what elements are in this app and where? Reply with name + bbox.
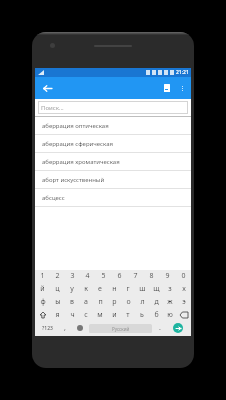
staticText: а bbox=[84, 297, 88, 307]
button[interactable]: Dictionary bbox=[159, 80, 175, 96]
staticText: е bbox=[98, 284, 102, 294]
staticText: о bbox=[126, 297, 131, 307]
staticText: щ bbox=[153, 284, 160, 294]
button[interactable]: абсцесс bbox=[35, 189, 191, 206]
staticText: ж bbox=[167, 297, 173, 307]
button[interactable]: 3 bbox=[65, 270, 80, 282]
button[interactable]: 7 bbox=[127, 270, 143, 282]
button[interactable]: аберрация хроматическая bbox=[35, 153, 191, 170]
button[interactable]: ч bbox=[65, 308, 79, 321]
button[interactable]: 9 bbox=[159, 270, 175, 282]
button[interactable]: й bbox=[35, 282, 50, 295]
button[interactable]: и bbox=[107, 308, 121, 321]
staticText: м bbox=[97, 310, 103, 320]
button[interactable]: Enter bbox=[167, 321, 189, 335]
button[interactable]: ш bbox=[135, 282, 149, 295]
button[interactable]: ы bbox=[50, 295, 65, 308]
button[interactable]: Emoji bbox=[72, 321, 88, 335]
button[interactable]: аборт искусственный bbox=[35, 171, 191, 188]
staticText: 5 bbox=[101, 271, 106, 281]
staticText: т bbox=[126, 310, 130, 320]
button[interactable]: ю bbox=[163, 308, 177, 321]
staticText: 6 bbox=[117, 271, 122, 281]
button[interactable]: ц bbox=[50, 282, 65, 295]
staticText: ш bbox=[139, 284, 146, 294]
staticText: 0 bbox=[181, 271, 186, 281]
button[interactable]: т bbox=[121, 308, 135, 321]
button[interactable]: 2 bbox=[50, 270, 65, 282]
button[interactable]: 8 bbox=[143, 270, 159, 282]
button[interactable]: , bbox=[58, 321, 72, 335]
button[interactable]: э bbox=[177, 295, 191, 308]
button[interactable]: х bbox=[177, 282, 191, 295]
staticText: 2 bbox=[55, 271, 60, 281]
staticText: ц bbox=[55, 284, 60, 294]
staticText: д bbox=[154, 297, 159, 307]
staticText: 8 bbox=[149, 271, 154, 281]
staticText: Поиск... bbox=[41, 104, 64, 112]
staticText: з bbox=[168, 284, 172, 294]
button[interactable]: в bbox=[65, 295, 79, 308]
button[interactable]: Shift bbox=[35, 308, 50, 321]
staticText: б bbox=[154, 310, 159, 320]
button[interactable]: More options bbox=[175, 81, 189, 95]
button[interactable]: р bbox=[107, 295, 121, 308]
button[interactable]: 0 bbox=[175, 270, 191, 282]
staticText: аберрация сферическая bbox=[42, 140, 113, 148]
staticText: 21:21 bbox=[176, 69, 189, 76]
button[interactable]: н bbox=[107, 282, 121, 295]
button[interactable]: ф bbox=[35, 295, 50, 308]
staticText: в bbox=[70, 297, 74, 307]
staticText: 4 bbox=[85, 271, 90, 281]
staticText: ь bbox=[140, 310, 144, 320]
staticText: , bbox=[64, 323, 66, 333]
staticText: 1 bbox=[40, 271, 45, 281]
button[interactable]: ж bbox=[163, 295, 177, 308]
button[interactable]: у bbox=[65, 282, 79, 295]
staticText: аборт искусственный bbox=[42, 176, 105, 184]
button[interactable]: к bbox=[79, 282, 93, 295]
button[interactable]: аберрация оптическая bbox=[35, 117, 191, 134]
button[interactable]: м bbox=[93, 308, 107, 321]
staticText: аберрация хроматическая bbox=[42, 158, 120, 166]
button[interactable]: щ bbox=[149, 282, 163, 295]
button[interactable]: 4 bbox=[80, 270, 95, 282]
button[interactable]: Back bbox=[39, 80, 55, 96]
staticText: . bbox=[159, 323, 161, 333]
staticText: я bbox=[55, 310, 60, 320]
button[interactable]: Русский bbox=[89, 324, 152, 333]
staticText: ф bbox=[40, 297, 46, 307]
button[interactable]: д bbox=[149, 295, 163, 308]
button[interactable]: б bbox=[149, 308, 163, 321]
staticText: к bbox=[84, 284, 88, 294]
staticText: х bbox=[182, 284, 186, 294]
button[interactable]: я bbox=[50, 308, 65, 321]
staticText: н bbox=[112, 284, 117, 294]
staticText: э bbox=[182, 297, 186, 307]
staticText: абсцесс bbox=[42, 194, 65, 202]
button[interactable]: 1 bbox=[35, 270, 50, 282]
staticText: п bbox=[98, 297, 103, 307]
button[interactable]: г bbox=[121, 282, 135, 295]
staticText: 3 bbox=[70, 271, 75, 281]
button[interactable]: з bbox=[163, 282, 177, 295]
button[interactable]: аберрация сферическая bbox=[35, 135, 191, 152]
button[interactable]: 5 bbox=[95, 270, 111, 282]
button[interactable]: Поиск... bbox=[38, 101, 188, 114]
staticText: 7 bbox=[133, 271, 138, 281]
button[interactable]: о bbox=[121, 295, 135, 308]
button[interactable]: 6 bbox=[111, 270, 127, 282]
button[interactable]: л bbox=[135, 295, 149, 308]
staticText: й bbox=[40, 284, 45, 294]
button[interactable]: . bbox=[153, 321, 167, 335]
button[interactable]: ?123 bbox=[37, 321, 58, 335]
staticText: с bbox=[84, 310, 88, 320]
staticText: ю bbox=[167, 310, 173, 320]
button[interactable]: е bbox=[93, 282, 107, 295]
staticText: 9 bbox=[165, 271, 170, 281]
button[interactable]: Backspace bbox=[177, 308, 191, 321]
button[interactable]: с bbox=[79, 308, 93, 321]
button[interactable]: ь bbox=[135, 308, 149, 321]
button[interactable]: п bbox=[93, 295, 107, 308]
button[interactable]: а bbox=[79, 295, 93, 308]
